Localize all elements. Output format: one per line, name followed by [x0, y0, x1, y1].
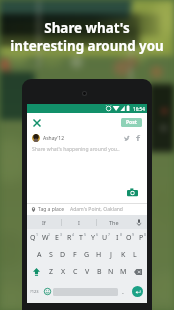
- button[interactable]: E: [51, 229, 63, 246]
- staticText: 16:54: [133, 106, 145, 112]
- staticText: C: [73, 267, 78, 277]
- staticText: 8: [120, 232, 123, 237]
- button[interactable]: O: [123, 229, 135, 246]
- staticText: If: [42, 219, 46, 226]
- button[interactable]: B: [93, 263, 105, 280]
- button[interactable]: Q: [27, 229, 39, 246]
- button[interactable]: Y: [87, 229, 99, 246]
- button[interactable]: P: [135, 229, 147, 246]
- staticText: 2: [48, 232, 51, 237]
- staticText: .: [122, 287, 124, 297]
- staticText: N: [108, 267, 114, 277]
- button[interactable]: C: [69, 263, 81, 280]
- staticText: M: [120, 267, 127, 277]
- button[interactable]: Backspace: [129, 263, 147, 280]
- button[interactable]: If: [27, 215, 61, 229]
- staticText: L: [133, 250, 137, 260]
- button[interactable]: H: [93, 246, 105, 263]
- button[interactable]: Share to Facebook: [133, 133, 143, 143]
- button[interactable]: A: [33, 246, 45, 263]
- staticText: Q: [30, 233, 36, 243]
- button[interactable]: Voice input: [131, 215, 147, 229]
- button[interactable]: I: [62, 215, 96, 229]
- button[interactable]: Share to Twitter: [122, 133, 132, 143]
- staticText: P: [139, 233, 144, 243]
- button[interactable]: I: [111, 229, 123, 246]
- staticText: I: [116, 233, 119, 243]
- staticText: 4: [72, 232, 75, 237]
- button[interactable]: W: [39, 229, 51, 246]
- staticText: 3: [60, 232, 63, 237]
- button[interactable]: L: [129, 246, 141, 263]
- button[interactable]: Enter: [128, 280, 147, 303]
- staticText: H: [96, 250, 102, 260]
- staticText: W: [42, 233, 49, 243]
- staticText: U: [102, 233, 108, 243]
- button[interactable]: G: [81, 246, 93, 263]
- staticText: A: [37, 250, 42, 260]
- staticText: Y: [91, 233, 95, 243]
- button[interactable]: V: [81, 263, 93, 280]
- staticText: Z: [49, 267, 54, 277]
- button[interactable]: N: [105, 263, 117, 280]
- staticText: Share what's happening around you..: [32, 146, 120, 153]
- button[interactable]: Add photo: [125, 185, 140, 200]
- button[interactable]: U: [99, 229, 111, 246]
- staticText: Ashay'12: [43, 135, 65, 142]
- button[interactable]: Shift: [27, 263, 45, 280]
- staticText: The: [109, 219, 119, 226]
- button[interactable]: Post: [121, 118, 142, 127]
- staticText: X: [61, 267, 66, 277]
- button[interactable]: S: [45, 246, 57, 263]
- staticText: 6: [96, 232, 99, 237]
- staticText: F: [73, 250, 77, 260]
- button[interactable]: T: [75, 229, 87, 246]
- staticText: 7: [108, 232, 111, 237]
- button[interactable]: K: [117, 246, 129, 263]
- button[interactable]: .: [118, 280, 128, 303]
- staticText: ?123: [30, 289, 39, 294]
- staticText: K: [121, 250, 126, 260]
- staticText: V: [85, 267, 90, 277]
- button[interactable]: Tag a place: [27, 204, 147, 215]
- staticText: T: [79, 233, 83, 243]
- button[interactable]: R: [63, 229, 75, 246]
- button[interactable]: J: [105, 246, 117, 263]
- button[interactable]: Z: [45, 263, 57, 280]
- button[interactable]: Close: [29, 115, 45, 131]
- button[interactable]: Emoji: [41, 280, 53, 303]
- button[interactable]: ?123: [27, 280, 41, 303]
- button[interactable]: F: [69, 246, 81, 263]
- staticText: E: [55, 233, 59, 243]
- staticText: B: [97, 267, 102, 277]
- staticText: Adam's Point, Oakland: [70, 206, 123, 213]
- staticText: J: [110, 250, 112, 260]
- staticText: 0: [144, 232, 147, 237]
- button[interactable]: M: [117, 263, 129, 280]
- staticText: G: [84, 250, 90, 260]
- staticText: Share what's: [44, 19, 130, 37]
- staticText: 1: [36, 232, 39, 237]
- staticText: I: [78, 219, 80, 226]
- staticText: O: [126, 233, 132, 243]
- staticText: R: [67, 233, 72, 243]
- staticText: interesting around you: [10, 37, 164, 55]
- staticText: 5: [84, 232, 87, 237]
- staticText: Tag a place: [38, 206, 65, 213]
- staticText: D: [60, 250, 66, 260]
- button[interactable]: D: [57, 246, 69, 263]
- staticText: 9: [132, 232, 135, 237]
- button[interactable]: X: [57, 263, 69, 280]
- button[interactable]: The: [97, 215, 131, 229]
- staticText: Post: [126, 119, 137, 126]
- staticText: S: [49, 250, 53, 260]
